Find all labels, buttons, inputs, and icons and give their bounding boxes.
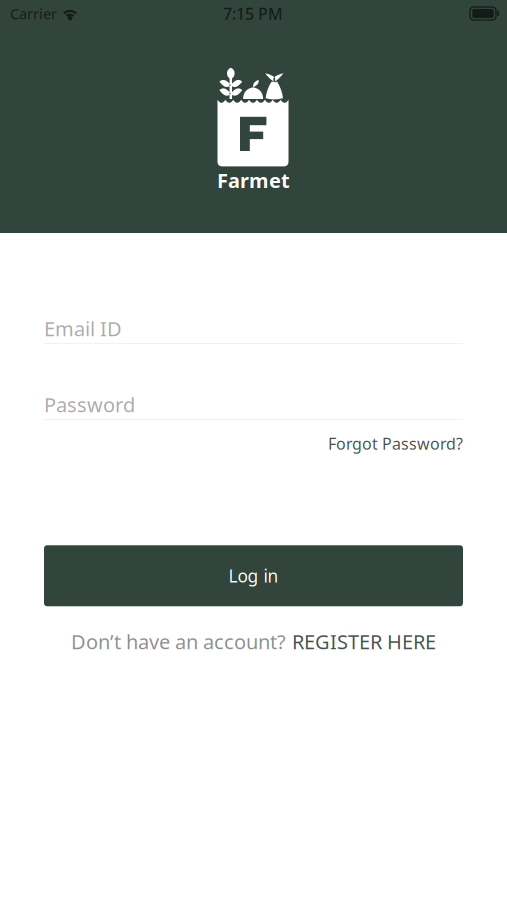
button[interactable]: Log in [44, 545, 463, 606]
staticText: Email ID [44, 315, 122, 342]
staticText: Don’t have an account? [71, 628, 286, 655]
button[interactable]: Forgot Password? [328, 420, 463, 454]
staticText: Farmet [217, 167, 290, 194]
staticText: Password [44, 391, 135, 418]
staticText: REGISTER HERE [292, 628, 436, 655]
staticText: Forgot Password? [328, 433, 463, 454]
staticText: Log in [228, 564, 278, 587]
staticText: 7:15 PM [223, 3, 283, 24]
button[interactable]: Don’t have an account? [44, 606, 463, 655]
staticText: Carrier [10, 4, 57, 23]
